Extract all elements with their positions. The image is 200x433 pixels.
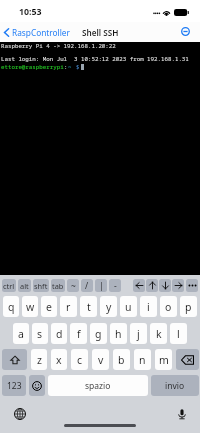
button[interactable]: a xyxy=(13,323,29,344)
staticText: v xyxy=(98,353,104,367)
staticText: tab xyxy=(52,281,64,291)
button[interactable]: y xyxy=(100,296,117,317)
button[interactable]: h xyxy=(110,323,127,344)
staticText: | xyxy=(99,280,104,292)
button[interactable]: Arrow left xyxy=(133,279,145,292)
staticText: y xyxy=(106,300,112,314)
staticText: alt xyxy=(20,281,29,291)
button[interactable]: n xyxy=(134,349,151,370)
staticText: r xyxy=(66,300,71,314)
button[interactable]: z xyxy=(31,349,47,370)
staticText: invio xyxy=(165,380,185,392)
staticText: a xyxy=(18,327,24,341)
button[interactable]: f xyxy=(70,323,87,344)
staticText: p xyxy=(185,300,192,314)
button[interactable]: s xyxy=(32,323,48,344)
button[interactable]: d xyxy=(51,323,67,344)
staticText: n xyxy=(139,353,146,367)
button[interactable]: ctrl xyxy=(2,279,16,292)
staticText: 123 xyxy=(7,380,22,392)
button[interactable]: p xyxy=(180,296,197,317)
button[interactable]: u xyxy=(120,296,137,317)
staticText: i xyxy=(147,300,150,314)
staticText: RaspController xyxy=(12,27,70,38)
button[interactable]: l xyxy=(170,323,187,344)
button[interactable]: b xyxy=(113,349,130,370)
staticText: - xyxy=(114,280,117,292)
button[interactable]: x xyxy=(51,349,67,370)
button[interactable]: Arrow right xyxy=(172,279,184,292)
staticText: f xyxy=(77,327,81,341)
staticText: k xyxy=(156,327,162,341)
staticText: c xyxy=(77,353,83,367)
staticText: ~ xyxy=(68,63,72,71)
staticText: t xyxy=(87,300,91,314)
button[interactable]: invio xyxy=(151,375,199,396)
staticText: u xyxy=(125,300,132,314)
button[interactable]: e xyxy=(41,296,57,317)
staticText: ctrl xyxy=(3,281,15,291)
button[interactable]: shft xyxy=(33,279,49,292)
button[interactable]: / xyxy=(81,279,93,292)
button[interactable]: RaspController xyxy=(3,27,70,38)
staticText: ettore@raspberrypi xyxy=(1,63,64,71)
button[interactable]: ~ xyxy=(67,279,79,292)
button[interactable]: c xyxy=(71,349,88,370)
button[interactable]: r xyxy=(60,296,77,317)
button[interactable]: Shift xyxy=(2,349,27,370)
button[interactable]: 123 xyxy=(2,375,26,396)
button[interactable]: t xyxy=(80,296,97,317)
button[interactable]: i xyxy=(140,296,157,317)
button[interactable]: v xyxy=(92,349,109,370)
button[interactable]: q xyxy=(3,296,19,317)
staticText: z xyxy=(37,353,42,367)
staticText: shft xyxy=(34,281,48,291)
button[interactable]: w xyxy=(22,296,38,317)
staticText: Raspberry Pi 4 -> 192.168.1.20:22 xyxy=(1,42,116,50)
staticText: g xyxy=(95,327,102,341)
staticText: e xyxy=(46,300,52,314)
staticText: ~ xyxy=(71,280,76,292)
button[interactable]: Change keyboard xyxy=(12,406,28,422)
staticText: / xyxy=(85,280,89,292)
staticText: Last login: Mon Jul 3 10:52:12 2023 from… xyxy=(1,55,189,63)
button[interactable]: o xyxy=(160,296,177,317)
staticText: : xyxy=(64,63,68,71)
button[interactable]: Arrow down xyxy=(159,279,171,292)
button[interactable]: Disconnect xyxy=(178,24,192,38)
staticText: o xyxy=(165,300,172,314)
staticText: x xyxy=(56,353,62,367)
staticText: 10:53 xyxy=(19,6,42,18)
staticText: s xyxy=(37,327,43,341)
button[interactable]: | xyxy=(95,279,107,292)
button[interactable]: More xyxy=(186,279,198,292)
button[interactable]: Emoji xyxy=(29,375,45,396)
button[interactable]: m xyxy=(155,349,172,370)
staticText: Shell SSH xyxy=(82,27,119,38)
button[interactable]: Dictation xyxy=(174,406,190,422)
button[interactable]: k xyxy=(150,323,167,344)
staticText: l xyxy=(177,327,180,341)
button[interactable]: Backspace xyxy=(176,349,199,370)
button[interactable]: - xyxy=(109,279,121,292)
button[interactable]: j xyxy=(130,323,147,344)
staticText: spazio xyxy=(85,380,111,392)
button[interactable]: Arrow up xyxy=(146,279,158,292)
button[interactable]: spazio xyxy=(48,375,148,396)
staticText: m xyxy=(159,353,169,367)
button[interactable]: alt xyxy=(18,279,31,292)
button[interactable]: g xyxy=(90,323,107,344)
staticText: $ xyxy=(76,63,80,71)
button[interactable]: tab xyxy=(51,279,65,292)
staticText: w xyxy=(26,300,35,314)
staticText: j xyxy=(137,327,140,341)
staticText: b xyxy=(118,353,125,367)
staticText: h xyxy=(115,327,122,341)
staticText: d xyxy=(56,327,63,341)
staticText: q xyxy=(8,300,15,314)
